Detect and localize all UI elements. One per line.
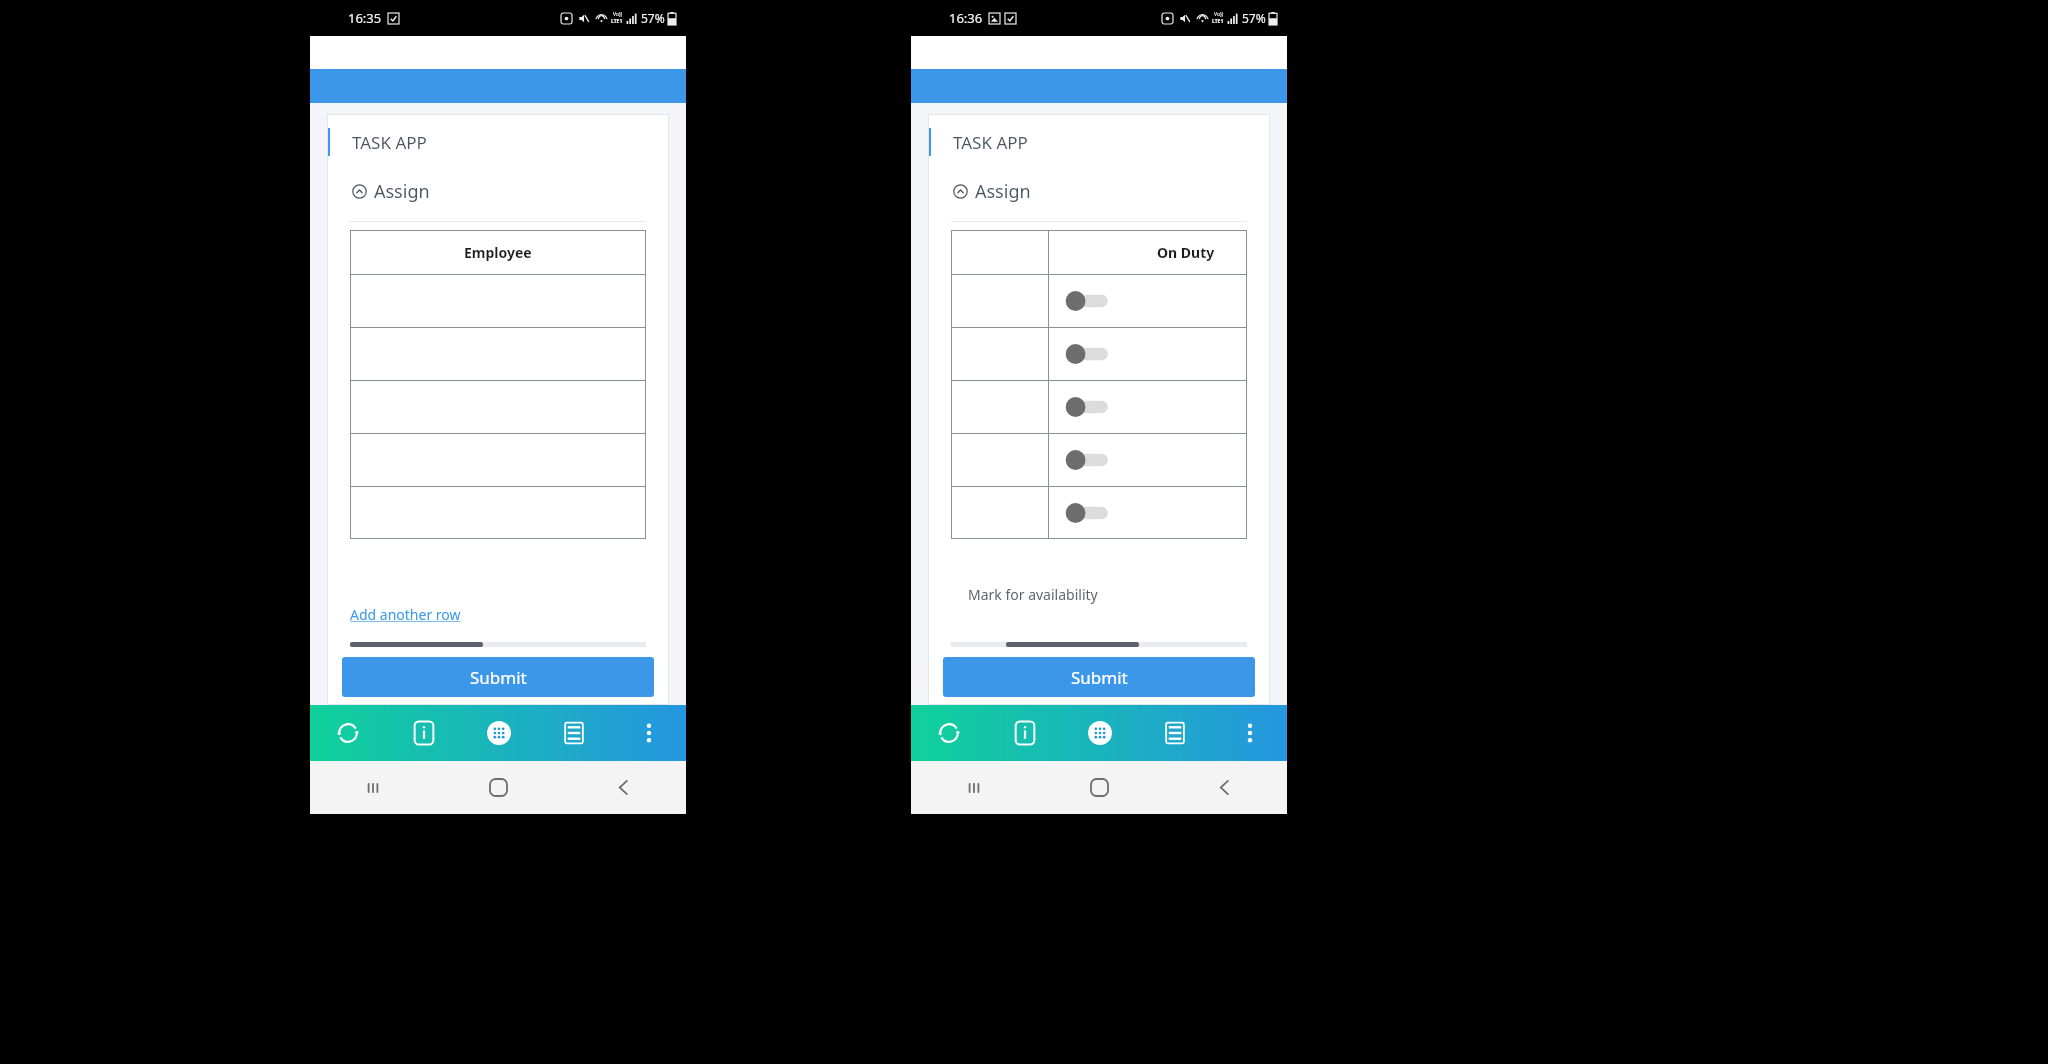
button[interactable]: List (536, 705, 611, 761)
button[interactable]: Apps (1062, 705, 1137, 761)
staticText: Submit (1071, 666, 1128, 689)
button[interactable]: Home (436, 761, 561, 814)
staticText: TASK APP (953, 131, 1028, 154)
staticText: Assign (374, 179, 430, 204)
button[interactable]: Add another row (350, 605, 461, 624)
button[interactable]: Sync (310, 705, 386, 761)
staticText: 16:35 (348, 9, 382, 27)
button[interactable]: Recents (911, 761, 1037, 814)
button[interactable]: Submit (342, 657, 654, 697)
staticText: LTE1 (1212, 18, 1224, 25)
button[interactable]: Back (1162, 761, 1287, 814)
button[interactable]: On duty toggle (1065, 502, 1109, 524)
button[interactable]: Assign (928, 170, 1270, 212)
staticText: Vo)) (1214, 11, 1223, 18)
staticText: 16:36 (949, 9, 983, 27)
staticText: 57% (641, 10, 665, 26)
staticText: TASK APP (352, 131, 427, 154)
staticText: On Duty (1157, 243, 1215, 262)
staticText: Employee (464, 243, 532, 262)
button[interactable]: On duty toggle (1065, 343, 1109, 365)
button[interactable]: List (1137, 705, 1212, 761)
button[interactable]: Sync (911, 705, 987, 761)
button[interactable]: Home (1037, 761, 1162, 814)
button[interactable]: Submit (943, 657, 1255, 697)
button[interactable]: Info (987, 705, 1062, 761)
staticText: Assign (975, 179, 1031, 204)
button[interactable]: Info (386, 705, 461, 761)
button[interactable]: Recents (310, 761, 436, 814)
button[interactable]: More (611, 705, 686, 761)
button[interactable]: On duty toggle (1065, 449, 1109, 471)
staticText: Submit (470, 666, 527, 689)
staticText: Mark for availability (968, 585, 1270, 604)
button[interactable]: More (1212, 705, 1287, 761)
button[interactable]: Back (561, 761, 686, 814)
staticText: Vo)) (613, 11, 622, 18)
button[interactable]: On duty toggle (1065, 396, 1109, 418)
staticText: LTE1 (611, 18, 623, 25)
button[interactable]: On duty toggle (1065, 290, 1109, 312)
button[interactable]: Apps (461, 705, 536, 761)
button[interactable]: Assign (327, 170, 669, 212)
staticText: 57% (1242, 10, 1266, 26)
